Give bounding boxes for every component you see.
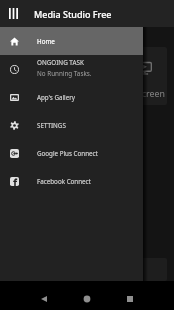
button[interactable]: ONGOING TASK [0,55,143,83]
button[interactable]: Home [74,284,100,310]
button[interactable]: Google Plus Connect [0,139,143,167]
button[interactable]: App's Gallery [0,83,143,111]
staticText: No Running Tasks. [37,69,92,78]
staticText: ONGOING TASK [37,58,84,67]
staticText: Home [37,37,55,46]
button[interactable]: Screen [6,47,167,105]
button[interactable]: SETTINGS [0,111,143,139]
staticText: SETTINGS [37,121,66,130]
staticText: Google Plus Connect [37,149,98,158]
button[interactable] [6,258,167,281]
button[interactable]: Home [0,27,143,55]
button[interactable]: Back [31,284,57,310]
staticText: Media Studio Free [34,8,112,20]
staticText: Facebook Connect [37,177,91,186]
staticText: App's Gallery [37,93,76,102]
button[interactable]: Recents [117,284,143,310]
staticText: Screen [137,88,165,100]
button[interactable]: Facebook Connect [0,167,143,195]
button[interactable]: Open navigation drawer [0,0,27,27]
